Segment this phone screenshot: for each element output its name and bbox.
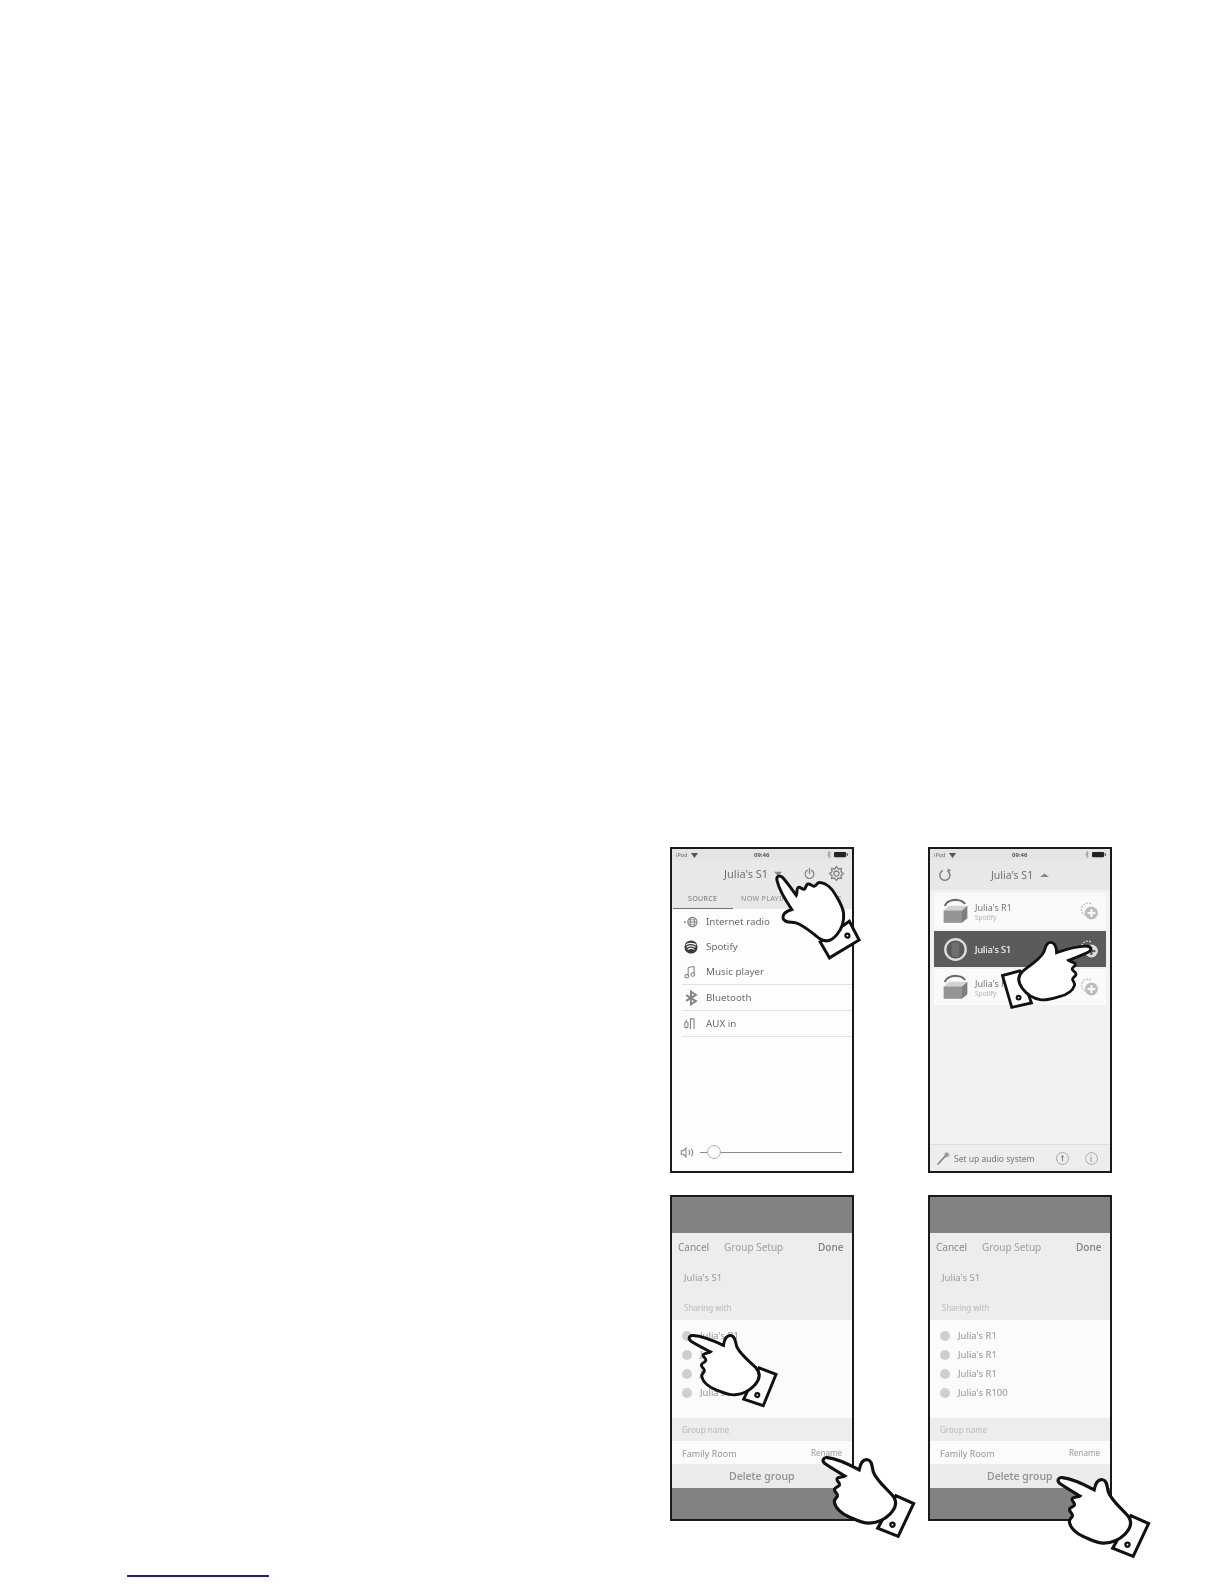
staticText: Julia's S1 [942,1271,981,1284]
staticText: Spotify [975,913,997,922]
staticText: Julia's R1 [700,1367,739,1380]
staticText: Music player [706,965,765,978]
button[interactable]: Internet radio [672,909,852,934]
staticText: Julia's S1 [724,866,769,881]
button[interactable]: Spotify [672,934,852,959]
button[interactable]: SOURCE [672,886,733,909]
staticText: 09:46 [1012,851,1028,859]
button[interactable]: Info [1082,1149,1100,1167]
button[interactable]: Done [818,1240,844,1254]
staticText: Spotify [706,940,738,953]
staticText: Cancel [936,1240,968,1254]
staticText: Group name [682,1424,730,1435]
staticText: Spotify [975,989,997,998]
button[interactable]: Add to group [1078,900,1100,922]
button[interactable]: Julia's R1 [682,1364,852,1383]
button[interactable]: Refresh [935,865,955,885]
staticText: AUX in [706,1017,737,1030]
staticText: Julia's S1 [975,943,1012,955]
button[interactable]: Music player [672,959,852,984]
staticText: iPod [934,851,946,858]
staticText: Internet radio [706,915,770,928]
staticText: Rename [1069,1447,1100,1458]
button[interactable] [707,1145,721,1159]
button[interactable]: NOW PLAYING [733,886,801,909]
button[interactable]: Julia's R1 [934,969,1106,1005]
staticText: NOW PLAYING [741,893,793,903]
button[interactable]: Add to group [1078,976,1100,998]
staticText: Julia's R1 [700,1348,739,1361]
button[interactable]: Power [799,863,819,883]
staticText: Julia's R1 [975,901,1012,913]
button[interactable]: Julia's R1 [682,1326,852,1345]
button[interactable]: Julia's R1 [682,1383,852,1402]
button[interactable]: Delete group [930,1464,1110,1488]
staticText: Julia's R1 [958,1348,997,1361]
button[interactable]: Julia's S1 [724,866,782,881]
staticText: Sharing with [684,1302,732,1313]
button[interactable]: Julia's S1 [991,868,1049,882]
staticText: Group name [940,1424,988,1435]
staticText: Set up audio system [954,1153,1035,1165]
button[interactable]: Add to group [1078,938,1100,960]
button[interactable]: Mute [679,1145,694,1160]
staticText: Delete group [729,1469,795,1483]
button[interactable]: Settings [826,863,846,883]
button[interactable]: Julia's R100 [940,1383,1110,1402]
staticText: Cancel [678,1240,710,1254]
staticText: Delete group [987,1469,1053,1483]
button[interactable]: Julia's R1 [940,1326,1110,1345]
staticText: Julia's R1 [975,977,1012,989]
button[interactable]: Done [1076,1240,1102,1254]
staticText: Rename [811,1447,842,1458]
button[interactable]: Bluetooth [672,985,852,1010]
button[interactable]: Julia's R1 [934,893,1106,929]
button[interactable]: AUX in [672,1011,852,1036]
staticText: BROWSE [811,893,842,903]
staticText: Done [818,1240,844,1254]
button[interactable]: BROWSE [801,886,852,909]
staticText: Sharing with [942,1302,990,1313]
button[interactable]: Julia's R1 [940,1345,1110,1364]
button[interactable]: Share [1053,1149,1071,1167]
button[interactable]: Julia's R1 [940,1364,1110,1383]
staticText: Bluetooth [706,991,752,1004]
button[interactable]: Family Room [682,1441,842,1464]
staticText: Julia's R1 [958,1329,997,1342]
staticText: Family Room [940,1447,995,1459]
staticText: 09:46 [754,851,770,859]
staticText: Julia's R1 [958,1367,997,1380]
staticText: Done [1076,1240,1102,1254]
button[interactable]: Cancel [936,1240,968,1254]
staticText: Group Setup [724,1240,784,1254]
button[interactable]: Family Room [940,1441,1100,1464]
staticText: Julia's R100 [958,1386,1008,1399]
button[interactable]: Cancel [678,1240,710,1254]
staticText: SOURCE [688,893,718,903]
button[interactable]: Julia's S1 [934,931,1106,967]
staticText: Julia's R1 [700,1329,739,1342]
staticText: Julia's S1 [684,1271,723,1284]
button[interactable]: Delete group [672,1464,852,1488]
staticText: iPod [676,851,688,858]
button[interactable]: Julia's R1 [682,1345,852,1364]
staticText: i [1090,1153,1093,1164]
staticText: Julia's S1 [991,868,1034,882]
staticText: Family Room [682,1447,737,1459]
staticText: Julia's R1 [700,1386,739,1399]
staticText: Group Setup [982,1240,1042,1254]
button[interactable]: Set up audio system [937,1152,1035,1165]
